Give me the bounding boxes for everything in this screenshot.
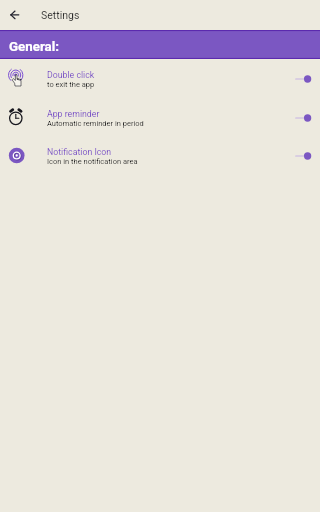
button[interactable]: Notification Icon, on — [286, 136, 320, 175]
button[interactable]: App reminder — [0, 98, 320, 137]
button[interactable]: Double click, on — [286, 59, 320, 98]
staticText: to exit the app — [47, 80, 95, 89]
staticText: Settings — [41, 9, 80, 21]
staticText: General: — [9, 39, 59, 55]
staticText: App reminder — [47, 109, 100, 119]
button[interactable]: Navigate up — [2, 3, 28, 29]
button[interactable]: Notification Icon — [0, 136, 320, 175]
staticText: Double click — [47, 70, 95, 80]
staticText: Icon in the notification area — [47, 157, 138, 166]
staticText: Automatic reminder in period — [47, 119, 144, 128]
staticText: Notification Icon — [47, 147, 112, 157]
button[interactable]: Double click — [0, 59, 320, 98]
button[interactable]: App reminder, on — [286, 98, 320, 137]
